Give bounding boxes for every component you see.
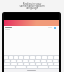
button[interactable] <box>18 63 23 65</box>
button[interactable] <box>24 63 29 65</box>
staticText: Replies in your same native spoken langu… <box>19 2 45 10</box>
button[interactable] <box>41 60 46 62</box>
button[interactable] <box>11 60 16 62</box>
button[interactable] <box>5 60 10 62</box>
button[interactable] <box>48 63 53 65</box>
button[interactable] <box>30 63 35 65</box>
button[interactable] <box>42 63 47 65</box>
button[interactable]: Send <box>5 27 58 30</box>
button[interactable] <box>47 60 52 62</box>
button[interactable] <box>54 63 59 65</box>
button[interactable] <box>29 60 34 62</box>
button[interactable] <box>17 60 22 62</box>
button[interactable] <box>4 20 59 26</box>
button[interactable] <box>35 60 40 62</box>
button[interactable] <box>53 60 58 62</box>
button[interactable] <box>23 60 28 62</box>
button[interactable] <box>36 63 41 65</box>
